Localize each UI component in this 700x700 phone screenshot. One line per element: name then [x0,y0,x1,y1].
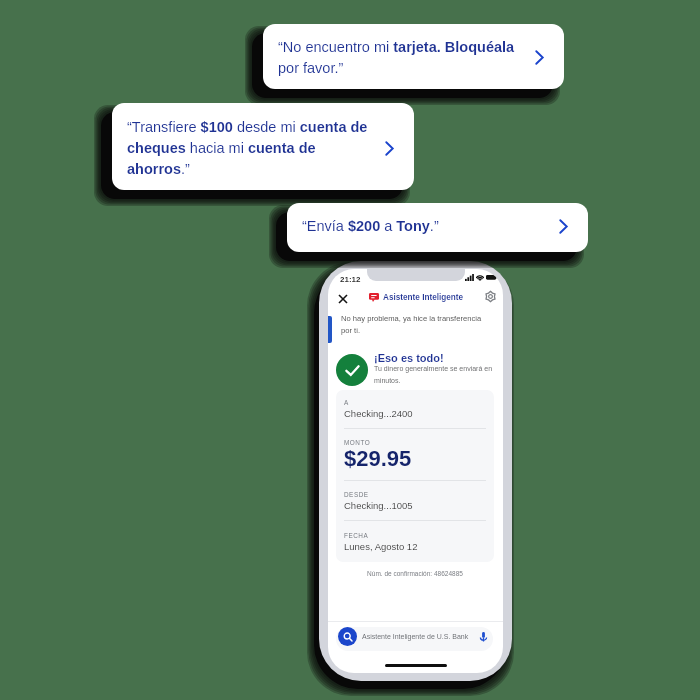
staticText: “Transfiere $100 desde mi cuenta de cheq… [127,119,385,177]
button[interactable] [336,627,493,651]
staticText: Tu dinero generalmente se enviará en min… [374,365,494,384]
staticText: A [344,399,349,406]
staticText: DESDE [344,491,369,498]
staticText: Lunes, Agosto 12 [344,541,418,552]
staticText: Asistente Inteligente de U.S. Bank [362,633,469,641]
staticText: No hay problema, ya hice la transferenci… [341,314,491,335]
staticText: MONTO [344,439,371,446]
button[interactable]: “Envía $200 a Tony.” [287,203,588,252]
button[interactable]: Voice input [477,631,489,643]
staticText: “No encuentro mi tarjeta. Bloquéala por … [278,39,535,76]
button[interactable]: Asistente Inteligente [369,290,464,304]
button[interactable]: “No encuentro mi tarjeta. Bloquéala por … [263,24,564,89]
staticText: $29.95 [344,446,412,471]
staticText: 21:12 [340,275,361,284]
staticText: Checking...2400 [344,408,413,419]
button[interactable]: Settings [483,289,498,304]
button[interactable]: “Transfiere $100 desde mi cuenta de cheq… [112,103,414,190]
staticText: Checking...1005 [344,500,413,511]
staticText: “Envía $200 a Tony.” [302,218,559,234]
staticText: Núm. de confirmación: 48624885 [336,570,494,577]
staticText: FECHA [344,532,369,539]
button[interactable]: Close [334,290,351,307]
staticText: ¡Eso es todo! [374,352,444,364]
staticText: Asistente Inteligente [383,293,464,302]
